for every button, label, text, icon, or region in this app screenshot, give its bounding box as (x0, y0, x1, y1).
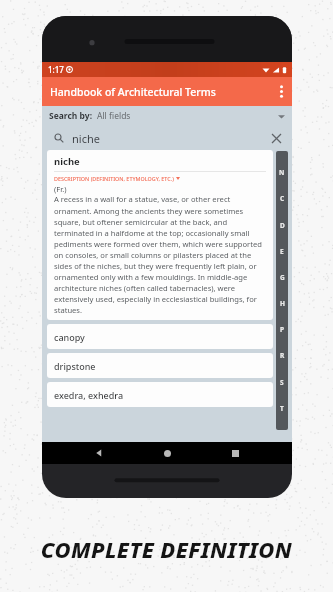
staticText: COMPLETE DEFINITION (0, 534, 333, 564)
staticText: P (280, 325, 285, 334)
button[interactable]: More options (270, 77, 292, 106)
staticText: D (280, 221, 285, 230)
staticText: dripstone (54, 360, 96, 372)
button[interactable]: Search by: (42, 106, 292, 126)
button[interactable]: Recent apps (224, 442, 246, 464)
button[interactable]: dripstone (47, 353, 273, 378)
button[interactable]: niche (47, 150, 273, 320)
staticText: All fields (97, 110, 131, 122)
staticText: N (279, 168, 285, 177)
staticText: niche (54, 155, 80, 168)
staticText: 1:17 (48, 64, 64, 75)
staticText: C (280, 194, 285, 203)
button[interactable]: Back (88, 442, 110, 464)
staticText: A recess in a wall for a statue, vase, o… (54, 194, 266, 315)
button[interactable]: exedra, exhedra (47, 382, 273, 407)
staticText: Handbook of Architectural Terms (50, 85, 216, 99)
button[interactable]: canopy (47, 324, 273, 349)
staticText: (Fr.) (54, 184, 67, 194)
staticText: E (280, 247, 284, 256)
staticText: Search by: (49, 110, 93, 122)
staticText: S (280, 378, 284, 387)
staticText: niche (72, 131, 100, 146)
staticText: H (280, 299, 285, 308)
staticText: G (280, 273, 285, 282)
button[interactable]: Clear search (269, 131, 283, 145)
button[interactable]: Home (156, 442, 178, 464)
staticText: DESCRIPTION (DEFINITION, ETYMOLOGY, ETC.… (54, 175, 174, 182)
staticText: R (280, 351, 285, 360)
staticText: T (280, 404, 284, 413)
staticText: exedra, exhedra (54, 389, 124, 401)
button[interactable]: Alphabet index (276, 151, 288, 430)
button[interactable]: niche (42, 126, 292, 150)
staticText: canopy (54, 331, 85, 343)
